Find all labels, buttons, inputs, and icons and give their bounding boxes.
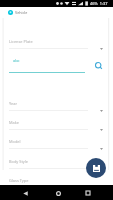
staticText: Body Style xyxy=(9,159,28,164)
staticText: Make xyxy=(9,120,19,125)
button[interactable]: Model xyxy=(0,139,113,158)
button[interactable]: Glass Type xyxy=(0,178,113,197)
button[interactable]: abc xyxy=(0,58,113,76)
button[interactable]: Home xyxy=(51,186,65,200)
button[interactable]: Year xyxy=(0,101,113,120)
other: Search xyxy=(95,62,103,70)
button[interactable]: License Plate xyxy=(0,39,113,58)
staticText: License Plate xyxy=(9,39,33,44)
staticText: abc xyxy=(13,58,20,63)
button[interactable]: Make xyxy=(0,120,113,139)
button[interactable]: Body Style xyxy=(0,159,113,178)
staticText: Glass Type xyxy=(9,178,29,183)
staticText: Year xyxy=(9,101,17,106)
staticText: Vehicle xyxy=(15,10,28,15)
button[interactable]: Save xyxy=(86,158,106,178)
button[interactable]: Recents xyxy=(81,186,95,200)
button[interactable]: Back xyxy=(18,186,32,200)
staticText: Model xyxy=(9,139,21,144)
staticText: 46% 1:37 xyxy=(90,1,108,6)
